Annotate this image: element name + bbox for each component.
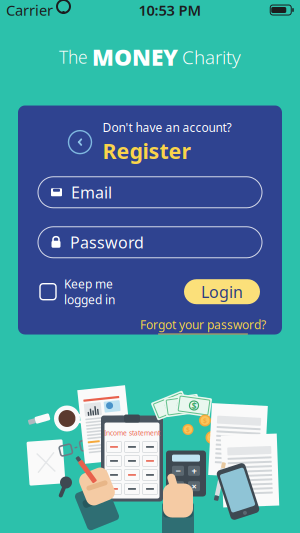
- staticText: $: [209, 432, 214, 443]
- staticText: Don't have an account?: [102, 119, 231, 135]
- staticText: Income statement: [104, 429, 160, 437]
- staticText: Forgot your password?: [140, 317, 266, 332]
- button[interactable]: Don't have an account?: [18, 105, 282, 177]
- staticText: $: [191, 399, 196, 412]
- staticText: =: [175, 480, 180, 492]
- button[interactable]: Keep me: [40, 276, 115, 308]
- staticText: $: [167, 399, 172, 412]
- staticText: Register: [102, 136, 191, 165]
- staticText: Password: [70, 232, 144, 253]
- staticText: $: [221, 413, 226, 424]
- staticText: ×: [191, 480, 196, 492]
- staticText: $: [179, 399, 184, 412]
- staticText: −: [175, 465, 180, 477]
- button[interactable]: Email: [38, 177, 262, 208]
- staticText: The: [59, 45, 88, 68]
- staticText: logged in: [64, 292, 115, 308]
- staticText: Carrier: [6, 0, 53, 20]
- staticText: $: [203, 416, 207, 425]
- button[interactable]: Password: [38, 227, 262, 258]
- button[interactable]: Login: [184, 279, 260, 304]
- staticText: MONEY: [92, 42, 178, 72]
- staticText: Email: [71, 182, 112, 203]
- staticText: Login: [201, 281, 243, 302]
- staticText: $: [186, 425, 190, 434]
- staticText: Charity: [182, 45, 241, 69]
- staticText: +: [191, 465, 196, 477]
- button[interactable]: Forgot your password?: [140, 317, 266, 334]
- staticText: Keep me: [64, 276, 113, 292]
- staticText: 10:53 PM: [138, 0, 201, 20]
